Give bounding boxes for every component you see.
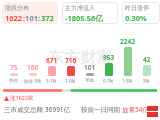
button[interactable]: 涨跌分布 [2, 2, 58, 24]
staticText: 5%- [143, 78, 151, 84]
other: 东方财富 logo [147, 106, 158, 117]
staticText: 42 [143, 55, 151, 64]
staticText: 涨1622家 [10, 94, 34, 102]
button[interactable]: 主力净流入 [62, 2, 118, 24]
button[interactable]: 昨日涨停 [122, 2, 160, 24]
staticText: 953 [103, 53, 115, 62]
other: 上涨 [4, 96, 9, 101]
staticText: 0-1% [103, 78, 114, 84]
staticText: -1805.56亿 [65, 13, 103, 22]
staticText: 1-0% [65, 78, 76, 84]
staticText: 36991亿 [45, 105, 71, 114]
button[interactable]: 671 [42, 56, 61, 84]
staticText: 2242 [120, 37, 135, 46]
staticText: 放量54亿 [122, 105, 149, 114]
staticText: 1-5% [122, 78, 133, 84]
staticText: 160 [27, 63, 39, 72]
staticText: 涨跌分布 [5, 4, 29, 12]
button[interactable] [3, 88, 157, 93]
button[interactable]: 42 [137, 55, 156, 84]
button[interactable]: 953 [99, 53, 118, 84]
staticText: 5-1% [46, 78, 57, 84]
button[interactable]: 2242 [118, 37, 137, 84]
button[interactable]: 716 [61, 56, 80, 84]
button[interactable]: 101 [80, 63, 99, 84]
staticText: 0.30% [125, 13, 147, 22]
staticText: 671 [46, 56, 58, 65]
staticText: 昨日涨停 [125, 4, 149, 12]
staticText: 101 [84, 63, 96, 72]
staticText: 716 [65, 56, 77, 65]
button[interactable]: 三市成交总额 [4, 105, 157, 114]
button[interactable]: 75 [4, 63, 23, 84]
button[interactable]: 160 [23, 63, 42, 84]
staticText: 跌停 [9, 78, 18, 84]
staticText: 三市成交总额 [4, 106, 43, 114]
staticText: 较前一日同期 [81, 106, 120, 114]
staticText: 东方财富 [48, 48, 112, 68]
staticText: 75 [10, 63, 18, 72]
staticText: 1622 [5, 13, 23, 22]
button[interactable]: 上涨 [4, 94, 160, 102]
staticText: 跌停-5% [24, 78, 41, 84]
staticText: 3729 [41, 13, 55, 22]
staticText: 主力净流入 [65, 4, 95, 12]
staticText: 平盘 [85, 78, 94, 84]
staticText: :101: [23, 13, 41, 22]
